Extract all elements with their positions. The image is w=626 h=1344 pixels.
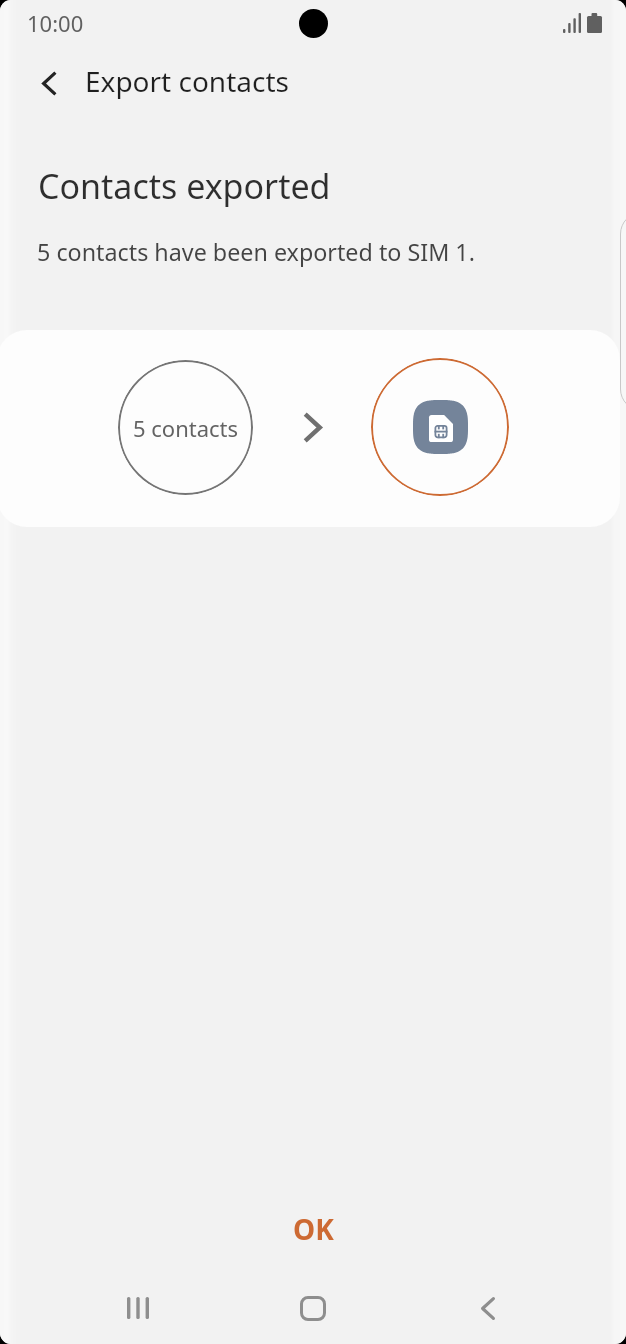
staticText: 10:00 [27, 8, 84, 38]
button[interactable]: Home [283, 1278, 343, 1338]
staticText: 5 contacts [133, 413, 239, 443]
button[interactable]: 5 contacts [118, 360, 253, 495]
staticText: Contacts exported [38, 163, 331, 209]
button[interactable]: Recent apps [108, 1278, 168, 1338]
button[interactable]: Back [21, 55, 77, 111]
button[interactable]: OK [246, 1197, 381, 1261]
staticText: OK [293, 1210, 334, 1248]
button[interactable]: Back [458, 1278, 518, 1338]
staticText: Export contacts [85, 62, 289, 100]
button[interactable] [371, 358, 509, 496]
staticText: 5 contacts have been exported to SIM 1. [37, 236, 475, 268]
